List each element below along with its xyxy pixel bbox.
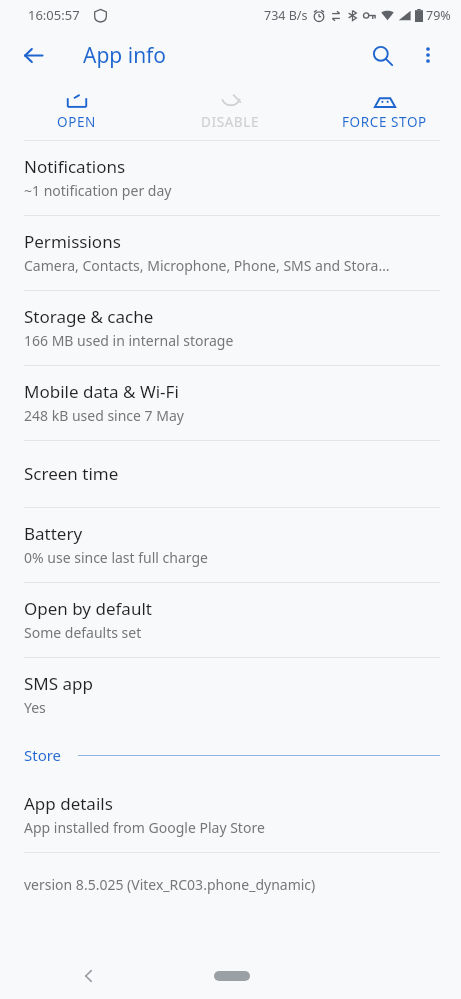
staticText: Some defaults set (24, 623, 142, 642)
staticText: version 8.5.025 (Vitex_RC03.phone_dynami… (24, 875, 316, 894)
staticText: App installed from Google Play Store (24, 818, 265, 837)
staticText: 248 kB used since 7 May (24, 406, 184, 425)
button[interactable]: Permissions (0, 216, 461, 290)
staticText: FORCE STOP (342, 113, 427, 131)
staticText: Screen time (24, 462, 119, 485)
staticText: Mobile data & Wi-Fi (24, 380, 179, 403)
button[interactable]: Search (361, 34, 403, 76)
staticText: ~1 notification per day (24, 181, 172, 200)
button[interactable]: Back (68, 955, 110, 997)
staticText: SMS app (24, 672, 93, 695)
button[interactable]: Home (214, 971, 250, 981)
button[interactable]: Storage & cache (0, 291, 461, 365)
staticText: DISABLE (201, 113, 260, 131)
button[interactable]: Screen time (0, 441, 461, 507)
button[interactable]: SMS app (0, 658, 461, 732)
staticText: OPEN (57, 113, 96, 131)
staticText: Yes (24, 698, 46, 717)
staticText: 166 MB used in internal storage (24, 331, 234, 350)
button[interactable]: Battery (0, 508, 461, 582)
staticText: Storage & cache (24, 305, 154, 328)
staticText: 16:05:57 (28, 6, 80, 24)
button[interactable]: Open by default (0, 583, 461, 657)
staticText: Store (24, 745, 62, 765)
staticText: 79% (426, 7, 451, 24)
staticText: Open by default (24, 597, 152, 620)
button[interactable]: Back (13, 35, 53, 75)
staticText: Notifications (24, 155, 126, 178)
button[interactable]: DISABLE (153, 80, 307, 140)
staticText: App info (83, 41, 167, 70)
staticText: 0% use since last full charge (24, 548, 208, 567)
button[interactable]: Mobile data & Wi-Fi (0, 366, 461, 440)
staticText: Battery (24, 522, 83, 545)
staticText: App details (24, 792, 113, 815)
button[interactable]: OPEN (0, 80, 153, 140)
button[interactable]: Notifications (0, 141, 461, 215)
staticText: 734 B/s (264, 7, 308, 24)
button[interactable]: FORCE STOP (307, 80, 461, 140)
button[interactable]: App details (0, 778, 461, 852)
button[interactable]: More options (407, 34, 449, 76)
staticText: Permissions (24, 230, 121, 253)
staticText: Camera, Contacts, Microphone, Phone, SMS… (24, 256, 390, 275)
